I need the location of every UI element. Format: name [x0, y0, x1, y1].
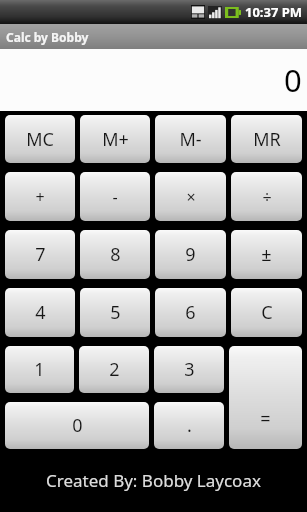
other: Battery [225, 7, 241, 18]
staticText: 9 [185, 242, 196, 267]
staticText: + [35, 186, 45, 208]
staticText: 8 [110, 242, 121, 267]
button[interactable]: 2 [79, 346, 149, 393]
staticText: 2 [109, 357, 120, 382]
button[interactable]: 6 [155, 288, 226, 337]
button[interactable]: . [154, 402, 224, 449]
button[interactable]: 1 [5, 346, 74, 393]
staticText: 0 [72, 413, 83, 438]
staticText: 1 [34, 357, 45, 382]
staticText: Created By: Bobby Laycoax [46, 469, 261, 492]
staticText: M- [179, 127, 202, 152]
staticText: × [186, 186, 196, 208]
button[interactable]: MC [5, 115, 75, 163]
staticText: 6 [185, 300, 196, 325]
staticText: 5 [110, 300, 121, 325]
staticText: 7 [35, 242, 46, 267]
staticText: = [260, 406, 271, 431]
staticText: ± [261, 242, 272, 267]
staticText: ÷ [262, 186, 272, 208]
staticText: C [261, 300, 273, 325]
staticText: MC [26, 127, 54, 152]
staticText: - [112, 186, 118, 208]
staticText: . [187, 413, 192, 438]
staticText: 4 [35, 300, 46, 325]
button[interactable]: C [231, 288, 302, 337]
button[interactable]: M+ [80, 115, 150, 163]
button[interactable]: M- [155, 115, 226, 163]
staticText: M+ [102, 127, 129, 152]
staticText: 3 [184, 357, 195, 382]
button[interactable]: 0 [5, 402, 149, 449]
button[interactable]: × [155, 172, 226, 221]
staticText: 0 [284, 59, 302, 101]
other: 3G network [191, 5, 205, 19]
button[interactable]: 8 [80, 230, 150, 279]
button[interactable]: 3 [154, 346, 224, 393]
other: Signal strength [208, 6, 222, 19]
button[interactable]: 4 [5, 288, 75, 337]
button[interactable]: + [5, 172, 75, 221]
button[interactable]: 9 [155, 230, 226, 279]
button[interactable]: 7 [5, 230, 75, 279]
staticText: 10:37 PM [245, 3, 303, 21]
button[interactable]: ÷ [231, 172, 302, 221]
button[interactable]: MR [231, 115, 302, 163]
button[interactable]: = [229, 346, 302, 449]
staticText: Calc by Bobby [6, 29, 89, 45]
button[interactable]: 5 [80, 288, 150, 337]
staticText: MR [253, 127, 281, 152]
button[interactable]: ± [231, 230, 302, 279]
button[interactable]: - [80, 172, 150, 221]
